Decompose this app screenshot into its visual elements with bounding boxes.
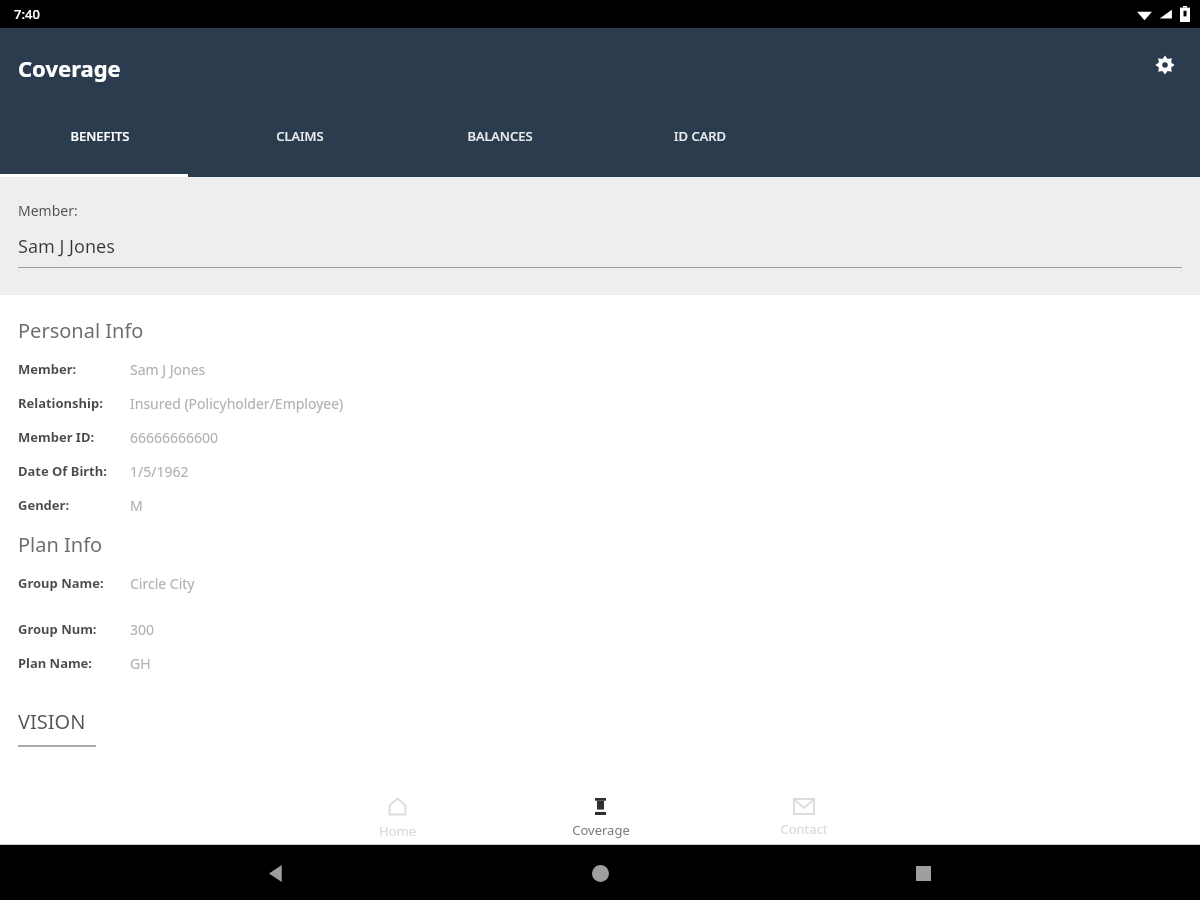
- staticText: Plan Info: [18, 531, 103, 558]
- button[interactable]: Settings: [1144, 44, 1186, 86]
- button[interactable]: Gender:: [0, 488, 1200, 522]
- staticText: M: [130, 496, 143, 515]
- button[interactable]: Sam J Jones: [18, 234, 115, 259]
- staticText: Member:: [18, 360, 130, 378]
- button[interactable]: Plan Name:: [0, 646, 1200, 680]
- button[interactable]: Home: [580, 853, 620, 893]
- button[interactable]: Group Name:: [0, 566, 1200, 600]
- staticText: Group Name:: [18, 574, 130, 592]
- staticText: Circle City: [130, 574, 195, 593]
- staticText: Group Num:: [18, 620, 130, 638]
- button[interactable]: Contact: [702, 785, 905, 838]
- staticText: Gender:: [18, 496, 130, 514]
- button[interactable]: Group Num:: [0, 612, 1200, 646]
- staticText: BENEFITS: [0, 127, 200, 145]
- staticText: Personal Info: [18, 317, 144, 344]
- staticText: 1/5/1962: [130, 462, 189, 481]
- button[interactable]: Home: [296, 783, 499, 840]
- staticText: GH: [130, 654, 151, 673]
- staticText: Contact: [780, 820, 828, 838]
- button[interactable]: BENEFITS: [0, 105, 200, 145]
- staticText: 66666666600: [130, 428, 219, 447]
- staticText: 300: [130, 620, 155, 639]
- staticText: Insured (Policyholder/Employee): [130, 394, 344, 413]
- button[interactable]: Recent apps: [903, 853, 943, 893]
- button[interactable]: Back: [257, 853, 297, 893]
- staticText: Date Of Birth:: [18, 462, 130, 480]
- staticText: Sam J Jones: [130, 360, 206, 379]
- staticText: Coverage: [572, 821, 630, 839]
- button[interactable]: BALANCES: [400, 105, 600, 145]
- staticText: 7:40: [14, 5, 40, 23]
- staticText: Member:: [18, 201, 78, 220]
- button[interactable]: Date Of Birth:: [0, 454, 1200, 488]
- staticText: Coverage: [18, 53, 121, 83]
- staticText: Relationship:: [18, 394, 130, 412]
- button[interactable]: Member:: [0, 352, 1200, 386]
- staticText: Home: [379, 822, 416, 840]
- staticText: Plan Name:: [18, 654, 130, 672]
- button[interactable]: Relationship:: [0, 386, 1200, 420]
- staticText: Member ID:: [18, 428, 130, 446]
- button[interactable]: ID CARD: [600, 105, 800, 145]
- button[interactable]: Coverage: [499, 784, 702, 839]
- staticText: ID CARD: [600, 127, 800, 145]
- staticText: CLAIMS: [200, 127, 400, 145]
- button[interactable]: Member ID:: [0, 420, 1200, 454]
- staticText: BALANCES: [400, 127, 600, 145]
- button[interactable]: CLAIMS: [200, 105, 400, 145]
- staticText: VISION: [18, 708, 86, 735]
